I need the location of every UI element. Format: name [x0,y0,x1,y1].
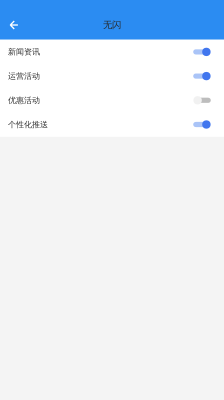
button[interactable]: 新闻资讯 [0,40,224,64]
staticText: 新闻资讯 [8,47,40,57]
button[interactable]: Back [3,14,25,36]
staticText: 优惠活动 [8,95,40,105]
staticText: 运营活动 [8,71,40,81]
staticText: 无闪 [103,19,121,31]
button[interactable]: 个性化推送 [0,112,224,137]
staticText: 个性化推送 [8,120,48,129]
button[interactable]: 优惠活动 [0,88,224,112]
button[interactable]: 运营活动 [0,64,224,88]
